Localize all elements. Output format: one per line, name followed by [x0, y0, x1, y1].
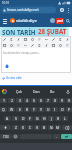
button[interactable]: Format tool 1_3	[22, 42, 29, 48]
button[interactable]: Format tool 0_0	[1, 36, 8, 42]
button[interactable]: 3	[16, 98, 23, 103]
button[interactable]: 7	[45, 98, 51, 103]
button[interactable]: Format tool 0_1	[8, 36, 15, 42]
staticText: 6	[61, 8, 63, 12]
staticText: D	[22, 116, 25, 121]
staticText: Y	[40, 107, 42, 112]
button[interactable]: Format tool 1_4	[29, 42, 36, 48]
button[interactable]: 2	[8, 98, 15, 103]
button[interactable]: 1	[0, 98, 7, 103]
button[interactable]: Format tool 1_5	[36, 42, 43, 48]
button[interactable]: I	[52, 107, 58, 112]
button[interactable]: Voice input	[65, 89, 70, 94]
staticText: 10:10	[2, 1, 10, 5]
staticText: bu alana bir cevap yazın...	[3, 51, 41, 55]
button[interactable]: Y	[38, 107, 44, 112]
button[interactable]: More options	[65, 7, 71, 13]
button[interactable]: Format tool 0_7	[50, 36, 57, 42]
staticText: N	[50, 125, 53, 130]
button[interactable]: N	[48, 125, 54, 130]
button[interactable]: G	[34, 116, 40, 121]
button[interactable]: B	[41, 125, 47, 130]
button[interactable]: R	[24, 107, 30, 112]
button[interactable]: Tabs	[58, 6, 65, 13]
button[interactable]: Z	[12, 125, 19, 130]
button[interactable]: Format tool 1_7	[50, 42, 57, 48]
button[interactable]: C	[27, 125, 33, 130]
button[interactable]: Format tool 0_6	[43, 36, 50, 42]
button[interactable]: Q	[0, 107, 7, 112]
button[interactable]: Format tool 0_4	[29, 36, 36, 42]
button[interactable]: 4	[24, 98, 30, 103]
staticText: W	[10, 107, 14, 112]
button[interactable]: Format tool 1_8	[57, 42, 64, 48]
staticText: U	[47, 107, 50, 112]
button[interactable]: 9	[59, 98, 65, 103]
button[interactable]: Format tool 1_2	[15, 42, 22, 48]
button[interactable]: Format tool 1_0	[1, 42, 8, 48]
button[interactable]: SON TARİH	[0, 27, 69, 36]
button[interactable]: V	[34, 125, 40, 130]
button[interactable]: Format tool 0_5	[36, 36, 43, 42]
staticText: F	[29, 116, 31, 121]
button[interactable]: M	[55, 125, 61, 130]
button[interactable]: 5	[31, 98, 37, 103]
staticText: 3	[19, 98, 21, 103]
button[interactable]: Format tool 1_9	[64, 42, 71, 48]
button[interactable]: O	[59, 107, 65, 112]
button[interactable]: Enter	[61, 134, 72, 139]
staticText: yeni	[57, 19, 63, 23]
staticText: R	[26, 107, 29, 112]
staticText: M	[56, 125, 60, 130]
button[interactable]: Format tool 0_2	[15, 36, 22, 42]
button[interactable]: Shift	[0, 125, 11, 130]
button[interactable]: Format tool 0_3	[22, 36, 29, 42]
staticText: H	[43, 116, 46, 121]
button[interactable]: Google	[2, 89, 7, 94]
button[interactable]: U	[45, 107, 51, 112]
button[interactable]: A	[4, 116, 11, 121]
button[interactable]: Backspace	[62, 125, 72, 130]
button[interactable]: Format tool 0_9	[64, 36, 71, 42]
button[interactable]: Account	[50, 18, 55, 23]
staticText: L	[64, 116, 66, 121]
staticText: Gruba ekle	[6, 76, 22, 80]
staticText: J	[51, 116, 52, 121]
button[interactable]: E	[16, 107, 23, 112]
staticText: E	[19, 107, 21, 112]
button[interactable]: forum.sozlukdiye.net	[2, 7, 56, 13]
staticText: 5	[33, 98, 35, 103]
button[interactable]: L	[62, 116, 68, 121]
button[interactable]: Emoji	[12, 134, 19, 139]
staticText: SON TARİH	[2, 28, 38, 36]
button[interactable]: Period	[53, 134, 60, 139]
button[interactable]: J	[48, 116, 54, 121]
staticText: S	[15, 116, 17, 121]
button[interactable]: X	[20, 125, 26, 130]
staticText: K	[57, 116, 60, 121]
button[interactable]: Search	[65, 18, 71, 24]
button[interactable]: Format tool 1_1	[8, 42, 15, 48]
button[interactable]: Format tool 1_6	[43, 42, 50, 48]
staticText: X	[22, 125, 24, 130]
button[interactable]: K	[55, 116, 61, 121]
button[interactable]: H	[41, 116, 47, 121]
staticText: V	[36, 125, 39, 130]
staticText: 6	[40, 98, 42, 103]
button[interactable]: T	[31, 107, 37, 112]
button[interactable]: F	[27, 116, 33, 121]
button[interactable]: P	[66, 107, 72, 112]
button[interactable]: Format tool 0_8	[57, 36, 64, 42]
button[interactable]: S	[12, 116, 19, 121]
button[interactable]: W	[8, 107, 15, 112]
button[interactable]: Site logo	[10, 18, 15, 23]
button[interactable]: Gruba ekle	[2, 76, 22, 80]
button[interactable]: 6	[38, 98, 44, 103]
button[interactable]: Symbols	[0, 134, 11, 139]
button[interactable]: D	[20, 116, 26, 121]
button[interactable]: 0	[66, 98, 72, 103]
button[interactable]: yeni	[56, 18, 64, 24]
button[interactable]: 8	[52, 98, 58, 103]
button[interactable]: Menu	[2, 18, 8, 24]
